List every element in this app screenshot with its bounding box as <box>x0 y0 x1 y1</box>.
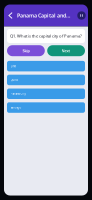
button[interactable]: Panama City <box>7 88 85 99</box>
staticText: Quito <box>10 78 18 82</box>
button[interactable]: Quito <box>7 75 85 85</box>
button[interactable]: Skip <box>7 45 45 56</box>
button[interactable]: Next <box>47 45 85 56</box>
button[interactable]: Lima <box>7 61 85 71</box>
staticText: Santiago <box>10 106 21 109</box>
staticText: Panama Capital and… <box>17 12 70 19</box>
button[interactable]: Pause quiz <box>76 10 87 21</box>
staticText: Q1. What is the capital city of Panama? <box>10 33 82 39</box>
staticText: Panama City <box>10 92 25 95</box>
staticText: Lima <box>10 64 15 68</box>
button[interactable]: Back <box>5 8 15 22</box>
staticText: Next <box>62 48 71 53</box>
staticText: Skip <box>22 48 29 53</box>
button[interactable]: Santiago <box>7 102 85 113</box>
